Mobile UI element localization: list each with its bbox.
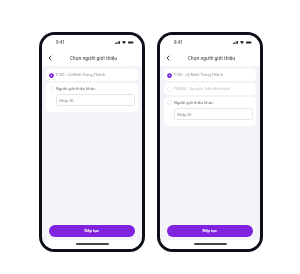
button[interactable]: Người giới thiệu khác: (164, 97, 256, 126)
button[interactable]: Tiếp tục (167, 225, 253, 237)
staticText: F120 - Lê Minh Trọng Thành (174, 72, 223, 77)
staticText: PM024 - Nguyễn Trần Minh Anh (174, 86, 230, 91)
button[interactable]: Tiếp tục (49, 225, 135, 237)
button[interactable]: Người giới thiệu khác: (46, 83, 138, 112)
staticText: Người giới thiệu khác: (174, 100, 214, 105)
button[interactable]: Back (163, 53, 173, 63)
staticText: Chọn người giới thiệu (70, 55, 118, 61)
staticText: 9:41 (174, 39, 183, 45)
staticText: Nhập ID (177, 112, 192, 117)
staticText: Tiếp tục (202, 228, 218, 234)
staticText: Chọn người giới thiệu (188, 55, 236, 61)
button[interactable]: F120 - Lê Minh Trọng Thành (164, 69, 256, 81)
staticText: F120 - Lê Minh Trọng Thành (56, 72, 105, 77)
button[interactable]: PM024 - Nguyễn Trần Minh Anh (164, 83, 256, 95)
button[interactable]: F120 - Lê Minh Trọng Thành (46, 69, 138, 81)
staticText: Người giới thiệu khác: (56, 86, 96, 91)
button[interactable]: Back (45, 53, 55, 63)
staticText: Nhập ID (59, 98, 74, 103)
staticText: Tiếp tục (84, 228, 100, 234)
staticText: 9:41 (56, 39, 65, 45)
